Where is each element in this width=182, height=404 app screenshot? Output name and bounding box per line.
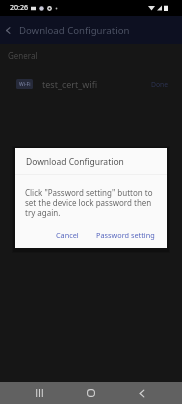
button[interactable]: Cancel — [51, 226, 84, 244]
staticText: Wi-Fi — [19, 81, 31, 88]
staticText: 20:26 — [10, 3, 28, 13]
staticText: General — [8, 50, 38, 61]
staticText: Password setting — [96, 230, 155, 240]
staticText: Cancel — [56, 230, 79, 240]
button[interactable]: Back — [0, 22, 16, 38]
staticText: Done — [151, 80, 169, 89]
staticText: Download Configuration — [26, 156, 124, 168]
button[interactable]: Wi-Fi — [0, 63, 182, 105]
button[interactable]: Back — [112, 382, 172, 404]
staticText: test_cert_wifi — [42, 78, 98, 90]
button[interactable]: Recent apps — [9, 382, 69, 404]
button[interactable]: Password setting — [91, 226, 160, 244]
staticText: Click "Password setting" button to set t… — [25, 187, 158, 218]
button[interactable]: Home — [61, 382, 121, 404]
staticText: Download Configuration — [19, 24, 130, 37]
